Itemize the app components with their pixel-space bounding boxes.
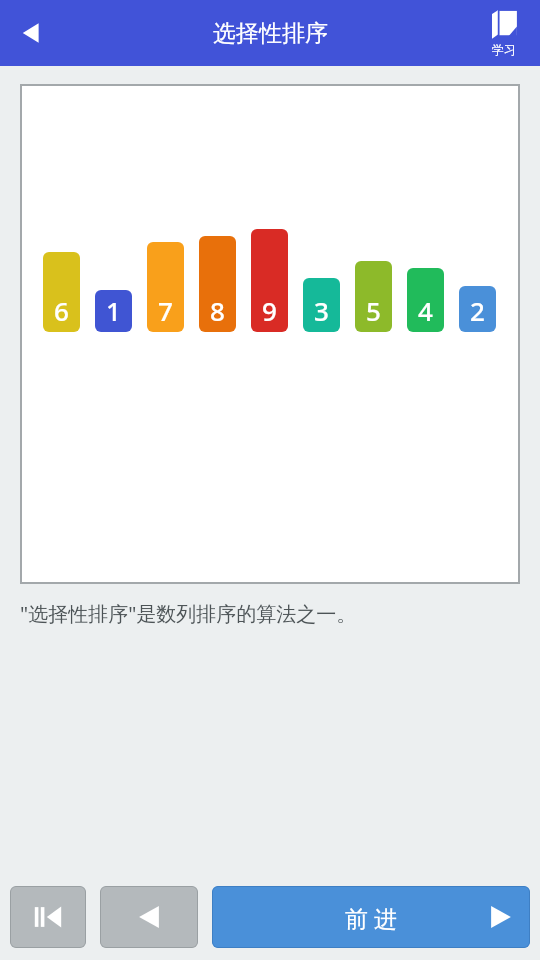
button[interactable]: 9 (251, 229, 288, 332)
staticText: 5 (366, 293, 381, 328)
staticText: 9 (262, 293, 277, 328)
staticText: 3 (314, 293, 329, 328)
staticText: 4 (418, 293, 433, 328)
button[interactable]: 5 (355, 261, 392, 332)
staticText: 2 (470, 293, 485, 328)
staticText: 1 (106, 293, 121, 328)
staticText: 学习 (492, 42, 516, 57)
button[interactable]: Back (8, 9, 56, 57)
button[interactable]: Back step (100, 886, 198, 948)
button[interactable]: 7 (147, 242, 184, 332)
button[interactable]: 6 (43, 252, 80, 332)
staticText: 7 (158, 293, 173, 328)
button[interactable]: 8 (199, 236, 236, 332)
button[interactable]: 4 (407, 268, 444, 332)
button[interactable]: 学习 (476, 0, 532, 66)
staticText: 选择性排序 (213, 19, 328, 48)
staticText: 8 (210, 293, 225, 328)
button[interactable]: 1 (95, 290, 132, 332)
staticText: 6 (54, 293, 69, 328)
staticText: "选择性排序"是数列排序的算法之一。 (20, 600, 357, 627)
button[interactable]: 2 (459, 286, 496, 332)
button[interactable]: 前 进 (212, 886, 530, 948)
button[interactable]: Restart (10, 886, 86, 948)
staticText: 前 进 (345, 902, 397, 933)
button[interactable]: 3 (303, 278, 340, 332)
